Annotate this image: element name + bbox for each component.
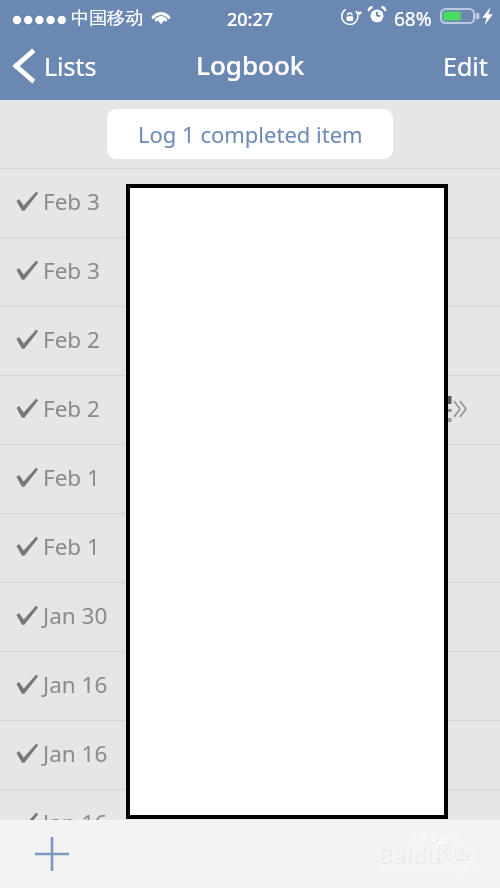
staticText: 中国移动 — [71, 7, 143, 30]
staticText: 68% — [394, 6, 432, 32]
staticText: Feb 1 — [43, 531, 100, 562]
button[interactable]: Jan 30 — [0, 583, 500, 651]
button[interactable]: Feb 3 — [0, 169, 500, 237]
staticText: Edit — [443, 49, 488, 83]
button[interactable]: Feb 1 — [0, 514, 500, 582]
button[interactable]: Add new to-do — [29, 831, 75, 877]
button[interactable]: Jan 16 — [0, 790, 500, 858]
staticText: Feb 1 — [43, 462, 100, 493]
staticText: Feb 2 — [43, 393, 100, 424]
button[interactable]: Feb 1 — [0, 445, 500, 513]
button[interactable]: Feb 2 — [0, 376, 500, 444]
staticText: 经验 — [434, 841, 470, 864]
button[interactable]: Jan 16 — [0, 721, 500, 789]
staticText: Feb 3 — [43, 255, 100, 286]
button[interactable]: Jan 16 — [0, 652, 500, 720]
button[interactable]: Log 1 completed item — [107, 109, 393, 159]
button[interactable]: Edit — [425, 40, 500, 100]
button[interactable]: Feb 2 — [0, 307, 500, 375]
staticText: 经验 — [435, 842, 471, 865]
staticText: Log 1 completed item — [138, 119, 363, 149]
staticText: Jan 30 — [43, 600, 108, 631]
staticText: Feb 3 — [43, 186, 100, 217]
staticText: Jan 16 — [43, 807, 108, 838]
staticText: Logbook — [196, 47, 305, 82]
staticText: Jan 16 — [43, 669, 108, 700]
staticText: Feb 2 — [43, 324, 100, 355]
staticText: Lists — [44, 49, 97, 83]
staticText: Baidu — [378, 839, 441, 869]
staticText: Jan 16 — [43, 738, 108, 769]
button[interactable]: Lists — [0, 40, 111, 100]
button[interactable]: Feb 3 — [0, 238, 500, 306]
staticText: Baidu — [379, 840, 442, 870]
staticText: 20:27 — [227, 7, 274, 32]
